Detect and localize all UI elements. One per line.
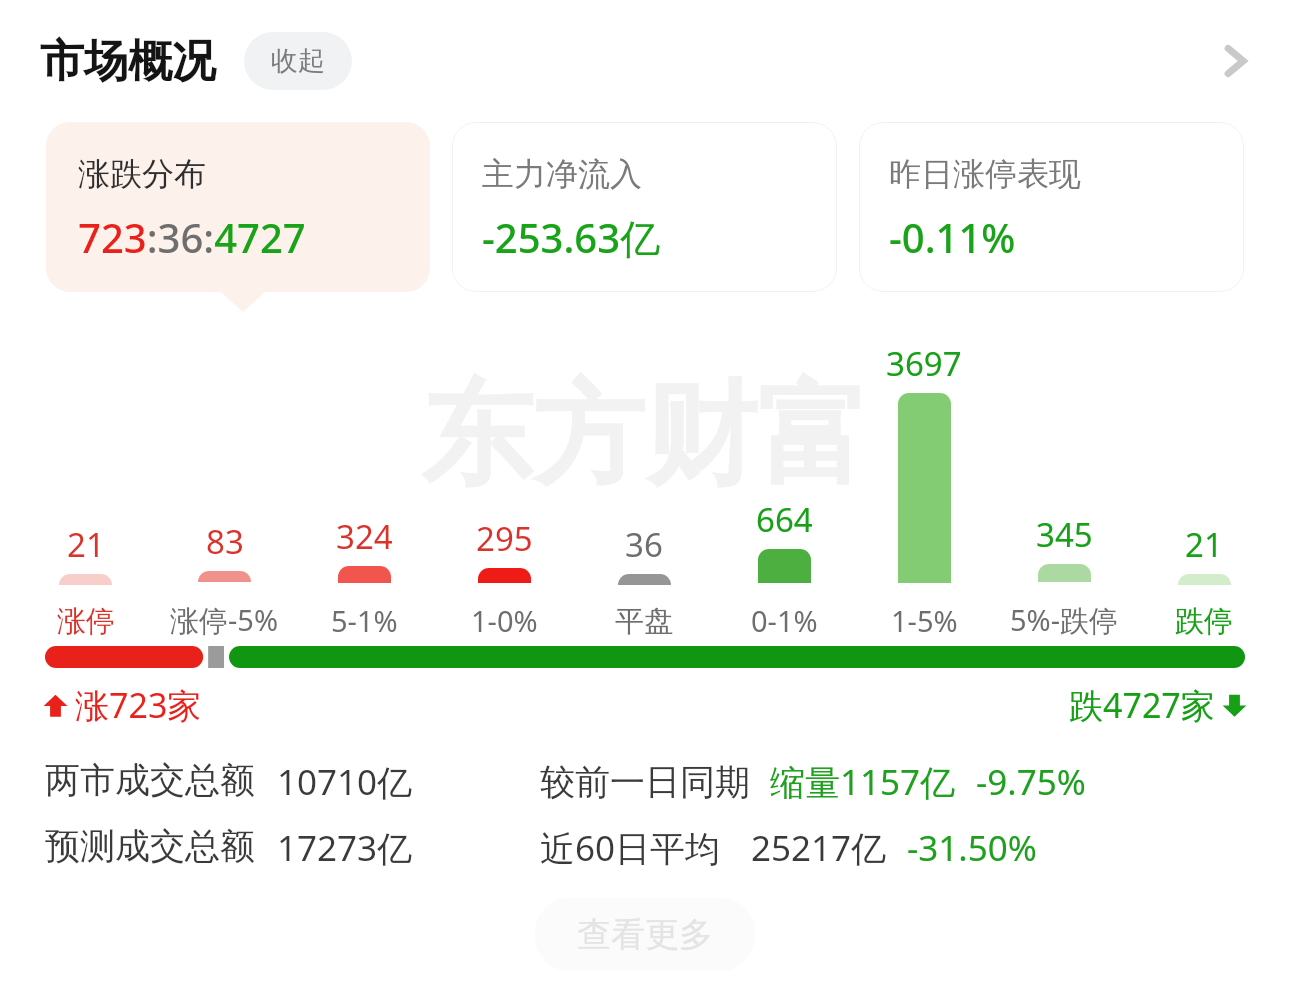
- staticText: 平盘: [615, 603, 673, 640]
- button[interactable]: 查看更多: [535, 898, 755, 971]
- staticText: 市场概况: [40, 34, 216, 89]
- staticText: 5%-跌停: [1010, 600, 1119, 640]
- staticText: 预测成交总额: [45, 824, 255, 868]
- staticText: 1-5%: [891, 601, 958, 640]
- staticText: -253.63亿: [482, 210, 661, 265]
- staticText: 昨日涨停表现: [889, 154, 1081, 194]
- staticText: 664: [756, 497, 813, 542]
- staticText: 涨停-5%: [170, 600, 279, 640]
- button[interactable]: 涨跌分布: [46, 122, 430, 292]
- staticText: 1-0%: [471, 601, 538, 640]
- staticText: -0.11%: [889, 210, 1016, 264]
- staticText: 10710亿: [277, 758, 413, 806]
- staticText: 收起: [271, 44, 325, 78]
- staticText: 324: [336, 514, 393, 559]
- staticText: 两市成交总额: [45, 758, 255, 802]
- staticText: 近60日平均: [540, 824, 721, 872]
- staticText: 295: [476, 516, 533, 561]
- staticText: 0-1%: [751, 601, 818, 640]
- staticText: 25217亿: [751, 824, 887, 872]
- staticText: 东方财富: [421, 365, 869, 506]
- staticText: 较前一日同期: [540, 760, 750, 804]
- staticText: 涨停: [57, 603, 115, 640]
- button[interactable]: 展开更多: [1192, 19, 1276, 103]
- staticText: 36: [625, 522, 663, 567]
- staticText: 主力净流入: [482, 154, 642, 194]
- staticText: 345: [1036, 512, 1093, 557]
- staticText: 17273亿: [277, 824, 413, 872]
- staticText: 缩量1157亿: [770, 758, 956, 806]
- staticText: 723:36:4727: [78, 210, 306, 264]
- staticText: 21: [1185, 522, 1223, 567]
- staticText: 5-1%: [331, 601, 398, 640]
- staticText: 跌停: [1175, 603, 1233, 640]
- staticText: -31.50%: [907, 824, 1037, 872]
- staticText: 83: [206, 519, 244, 564]
- staticText: 21: [67, 522, 105, 567]
- button[interactable]: 收起: [244, 32, 352, 90]
- staticText: 跌4727家: [1069, 682, 1215, 728]
- staticText: -9.75%: [976, 758, 1086, 806]
- button[interactable]: 昨日涨停表现: [859, 122, 1244, 292]
- staticText: 涨跌分布: [78, 154, 206, 194]
- staticText: 3697: [886, 341, 962, 386]
- button[interactable]: 主力净流入: [452, 122, 837, 292]
- staticText: 查看更多: [577, 913, 713, 956]
- staticText: 涨723家: [75, 682, 202, 728]
